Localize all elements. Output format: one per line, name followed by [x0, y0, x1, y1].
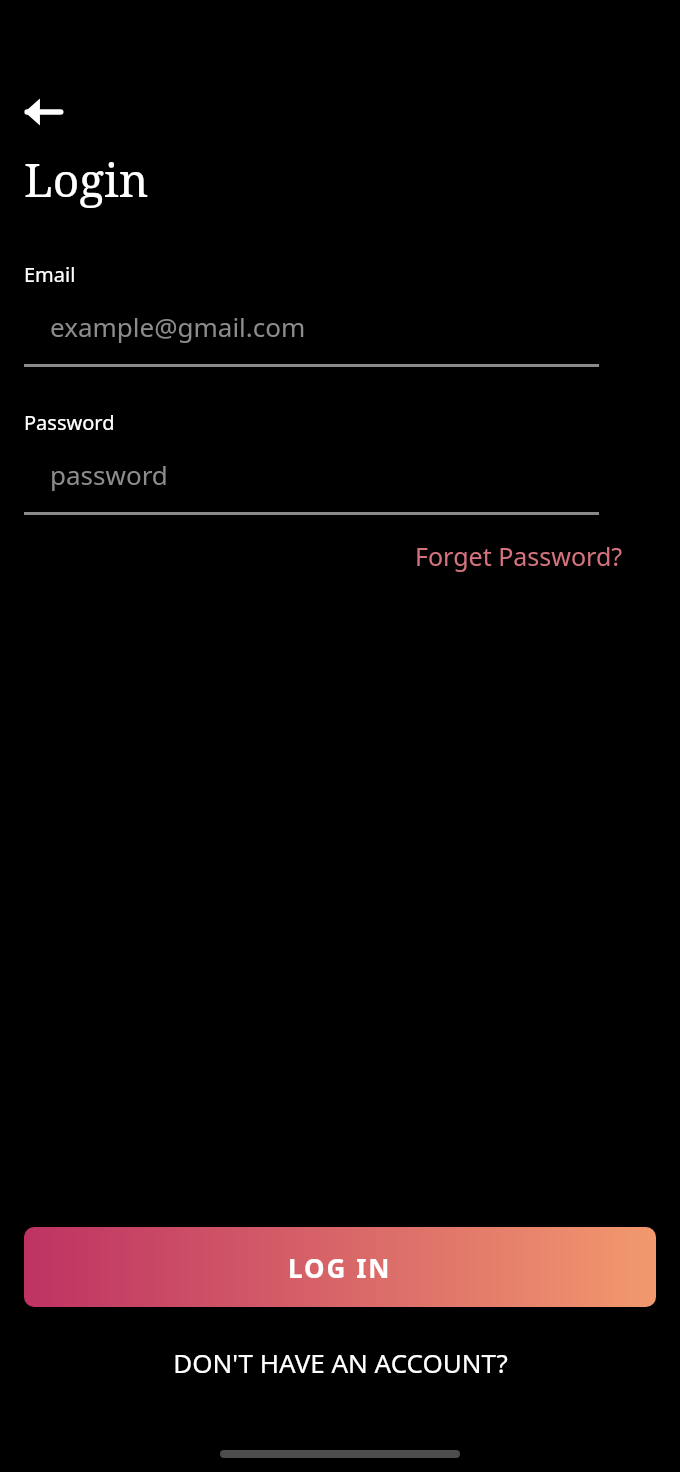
staticText: Email: [24, 261, 76, 288]
staticText: Forget Password?: [415, 539, 623, 573]
button[interactable]: password: [24, 436, 656, 512]
staticText: DON'T HAVE AN ACCOUNT?: [173, 1345, 508, 1380]
staticText: password: [50, 457, 168, 492]
staticText: LOG IN: [288, 1250, 392, 1285]
button[interactable]: DON'T HAVE AN ACCOUNT?: [24, 1345, 656, 1380]
button[interactable]: Back: [24, 92, 68, 132]
staticText: example@gmail.com: [50, 309, 306, 344]
button[interactable]: example@gmail.com: [24, 288, 656, 364]
button[interactable]: Forget Password?: [415, 539, 623, 573]
button[interactable]: LOG IN: [24, 1227, 656, 1307]
staticText: Login: [24, 148, 149, 211]
staticText: Password: [24, 409, 115, 436]
